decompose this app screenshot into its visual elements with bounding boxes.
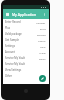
staticText: Finish: [39, 57, 46, 60]
staticText: Active: [39, 51, 46, 54]
button[interactable]: Home: [24, 89, 28, 93]
button[interactable]: Navigate up: [3, 9, 49, 19]
staticText: Cancel: [38, 39, 46, 42]
staticText: Entry: [40, 27, 46, 30]
button[interactable]: Account: [3, 49, 49, 55]
staticText: Enter Record: [5, 20, 21, 24]
button[interactable]: Plus: [3, 25, 49, 31]
staticText: Service My Vault: [5, 56, 25, 60]
button[interactable]: Valid package: [3, 31, 49, 37]
staticText: Settings: [5, 44, 15, 48]
button[interactable]: More options: [42, 12, 47, 17]
staticText: Total: [40, 45, 46, 48]
button[interactable]: Settings: [3, 43, 49, 49]
button[interactable]: Service My Vault: [3, 55, 49, 61]
staticText: Get Sample: [5, 38, 19, 42]
staticText: Service My Vault: [5, 62, 25, 66]
button[interactable]: Enter Record: [3, 19, 49, 25]
staticText: View Settings: [5, 68, 22, 72]
button[interactable]: Navigate up: [5, 12, 10, 17]
staticText: My Application: [12, 12, 37, 17]
staticText: Valid package: [5, 32, 22, 36]
staticText: Number: [36, 21, 46, 24]
button[interactable]: View Settings: [3, 67, 49, 73]
staticText: Other: [5, 74, 13, 78]
staticText: Recover: [37, 33, 46, 36]
staticText: Account: [5, 50, 15, 54]
button[interactable]: Service My Vault: [3, 61, 49, 67]
button[interactable]: Compose: [39, 75, 46, 82]
staticText: Plus: [5, 26, 11, 30]
button[interactable]: Other: [3, 73, 49, 79]
button[interactable]: Get Sample: [3, 37, 49, 43]
